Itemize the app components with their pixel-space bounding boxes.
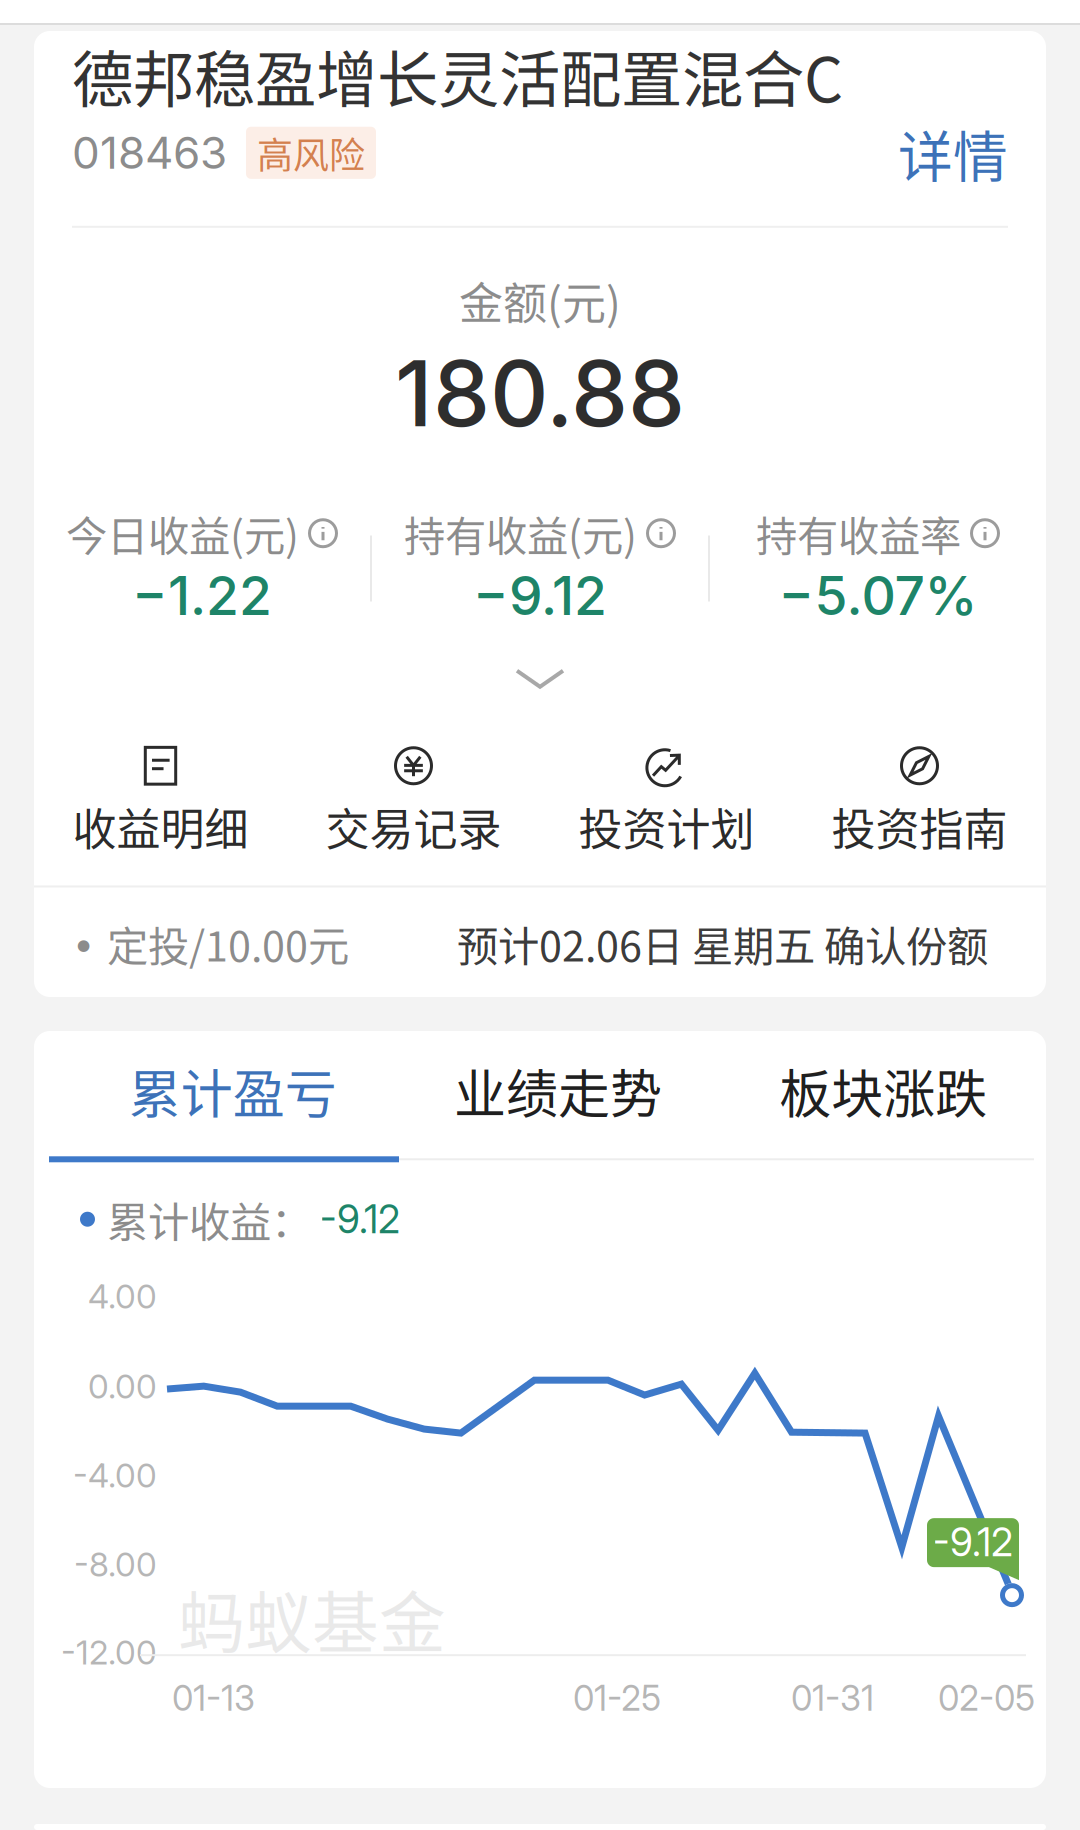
staticText: 4.00 <box>88 1276 157 1316</box>
staticText: −9.12 <box>473 563 607 628</box>
staticText: −5.07% <box>778 563 977 628</box>
staticText: 180.88 <box>395 338 685 448</box>
staticText: 01-13 <box>172 1677 255 1719</box>
staticText: -4.00 <box>73 1455 157 1495</box>
staticText: 持有收益(元) <box>404 503 637 563</box>
staticText: 定投/10.00元 <box>107 913 349 973</box>
staticText: -9.12 <box>933 1519 1013 1566</box>
button[interactable]: 投资指南 <box>793 746 1046 858</box>
staticText: −1.22 <box>132 563 272 628</box>
button[interactable]: 业绩走势 <box>395 1053 721 1128</box>
staticText: 今日收益(元) <box>66 503 299 563</box>
staticText: 累计收益： <box>107 1189 312 1249</box>
staticText: 持有收益率 <box>756 503 961 563</box>
button[interactable]: 累计盈亏 <box>70 1053 395 1128</box>
staticText: 投资指南 <box>831 795 1007 858</box>
staticText: 01-25 <box>573 1677 661 1719</box>
staticText: 金额(元) <box>459 269 621 332</box>
staticText: 累计盈亏 <box>129 1053 337 1128</box>
staticText: 高风险 <box>257 127 365 179</box>
staticText: -9.12 <box>320 1196 400 1243</box>
staticText: 业绩走势 <box>454 1053 662 1128</box>
staticText: 收益明细 <box>72 795 248 858</box>
button[interactable]: 详情 <box>898 113 1008 192</box>
button[interactable]: 交易记录 <box>287 746 540 858</box>
staticText: 板块涨跌 <box>779 1053 987 1128</box>
staticText: -8.00 <box>74 1544 157 1584</box>
staticText: 详情 <box>898 113 1008 192</box>
staticText: • <box>74 921 93 966</box>
button[interactable]: 收益明细 <box>34 746 287 858</box>
button[interactable]: 板块涨跌 <box>721 1053 1046 1128</box>
staticText: 0.00 <box>88 1366 157 1406</box>
button[interactable]: 投资计划 <box>540 746 793 858</box>
staticText: 02-05 <box>938 1677 1035 1719</box>
staticText: 01-31 <box>791 1677 874 1719</box>
staticText: 投资计划 <box>578 795 754 858</box>
staticText: 德邦稳盈增长灵活配置混合C <box>72 31 843 120</box>
staticText: 预计02.06日 星期五 确认份额 <box>457 913 988 973</box>
staticText: 018463 <box>72 126 227 179</box>
staticText: -12.00 <box>61 1632 157 1672</box>
staticText: 交易记录 <box>325 795 501 858</box>
staticText: 蚂蚁基金 <box>178 1570 446 1667</box>
